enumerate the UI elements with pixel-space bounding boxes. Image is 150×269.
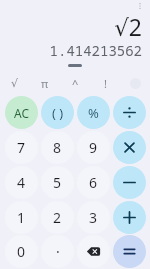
staticText: √ — [11, 77, 19, 90]
button[interactable]: · — [41, 235, 74, 268]
button[interactable]: √2 — [0, 11, 150, 39]
staticText: 0 — [17, 242, 26, 261]
staticText: ! — [104, 76, 107, 91]
button[interactable]: π — [30, 74, 60, 92]
button[interactable]: More functions — [120, 74, 150, 92]
button[interactable]: ^ — [60, 74, 90, 92]
staticText: √2 — [114, 11, 142, 39]
staticText: 2 — [53, 208, 62, 227]
staticText: ^ — [72, 76, 79, 91]
staticText: 3 — [89, 208, 98, 227]
button[interactable]: AC — [5, 96, 38, 129]
button[interactable]: 1.414213562 — [0, 41, 150, 59]
staticText: 1 — [17, 208, 26, 227]
button[interactable]: ! — [90, 74, 120, 92]
staticText: 6 — [89, 173, 98, 192]
staticText: 5 — [53, 173, 62, 192]
staticText: ( ) — [52, 104, 64, 122]
button[interactable]: % — [77, 96, 110, 129]
button[interactable]: More options — [135, 1, 145, 11]
button[interactable]: 7 — [5, 131, 38, 164]
staticText: 7 — [17, 138, 26, 157]
button[interactable]: 3 — [77, 201, 110, 234]
button[interactable]: Equals — [113, 235, 146, 268]
staticText: % — [88, 104, 99, 122]
button[interactable]: Plus — [113, 201, 146, 234]
button[interactable]: 4 — [5, 166, 38, 199]
staticText: 1.414213562 — [49, 41, 142, 59]
button[interactable]: Minus — [113, 166, 146, 199]
button[interactable]: 2 — [41, 201, 74, 234]
button[interactable]: 0 — [5, 235, 38, 268]
staticText: AC — [14, 105, 30, 121]
button[interactable]: Backspace — [77, 235, 110, 268]
button[interactable]: 1 — [5, 201, 38, 234]
button[interactable]: 5 — [41, 166, 74, 199]
button[interactable]: ( ) — [41, 96, 74, 129]
button[interactable]: √ — [0, 74, 30, 92]
button[interactable]: Divide — [113, 96, 146, 129]
button[interactable]: 6 — [77, 166, 110, 199]
staticText: π — [41, 76, 49, 91]
button[interactable]: 8 — [41, 131, 74, 164]
staticText: 4 — [17, 173, 26, 192]
staticText: 8 — [53, 138, 62, 157]
button[interactable]: Multiply — [113, 131, 146, 164]
button[interactable]: 9 — [77, 131, 110, 164]
staticText: 9 — [89, 138, 98, 157]
staticText: · — [56, 242, 60, 261]
